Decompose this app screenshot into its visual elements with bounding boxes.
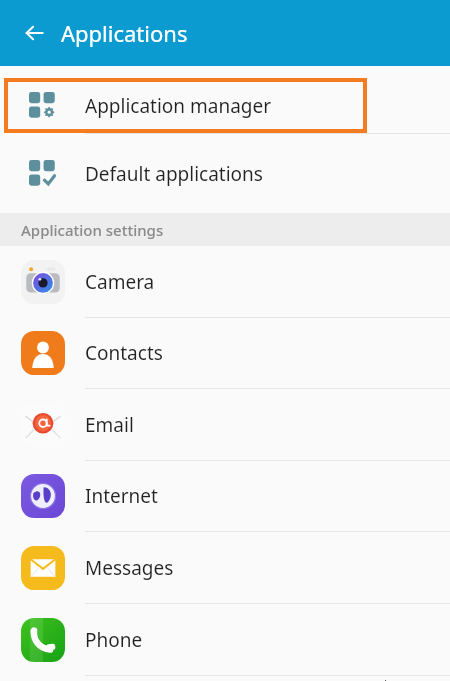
staticText: Default applications <box>85 161 263 187</box>
button[interactable]: Application manager <box>0 78 450 133</box>
button[interactable]: Application manager <box>0 78 450 132</box>
staticText: Camera <box>85 269 155 295</box>
staticText: Messages <box>85 555 174 581</box>
staticText: www.deuaq.com <box>351 676 438 681</box>
staticText: Phone <box>85 627 143 653</box>
staticText: Email <box>85 412 134 438</box>
button[interactable]: Internet <box>0 461 450 531</box>
button[interactable]: Default applications <box>0 134 450 213</box>
staticText: Application manager <box>85 92 272 118</box>
staticText: Application manager <box>85 93 272 119</box>
button[interactable]: Back <box>14 12 56 54</box>
button[interactable]: Phone <box>0 604 450 675</box>
staticText: Applications <box>61 18 188 48</box>
button[interactable]: Camera <box>0 246 450 317</box>
button[interactable]: Contacts <box>0 318 450 388</box>
button[interactable]: Messages <box>0 532 450 603</box>
button[interactable]: Email <box>0 389 450 460</box>
staticText: Contacts <box>85 340 163 366</box>
staticText: Application settings <box>21 220 164 240</box>
staticText: Internet <box>85 483 158 509</box>
